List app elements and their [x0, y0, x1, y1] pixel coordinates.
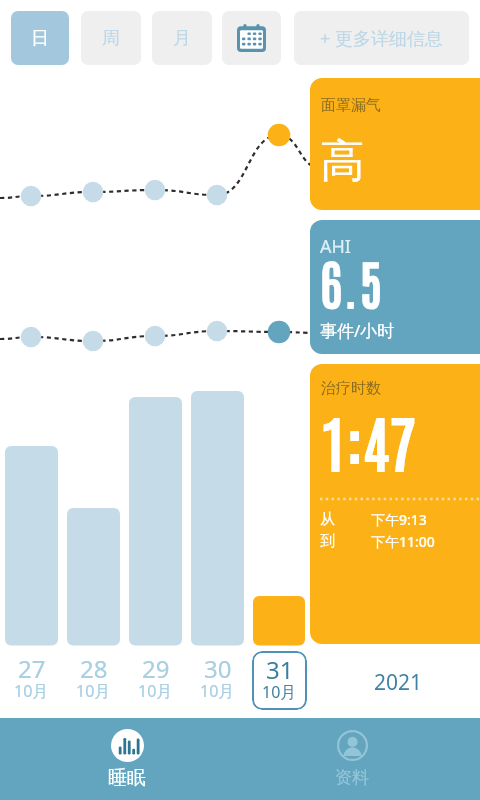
staticText: 10月: [14, 680, 49, 702]
staticText: 下午9:13: [371, 510, 427, 529]
staticText: 下午11:00: [371, 532, 435, 551]
staticText: 10月: [200, 680, 235, 702]
staticText: 28: [80, 652, 108, 685]
staticText: 月: [173, 27, 191, 50]
staticText: 日: [31, 27, 49, 50]
button[interactable]: 日: [11, 11, 69, 65]
staticText: 30: [204, 652, 232, 685]
staticText: 事件/小时: [320, 319, 395, 342]
staticText: 29: [142, 652, 170, 685]
staticText: 10月: [262, 681, 297, 703]
button[interactable]: 治疗时数: [310, 364, 480, 644]
staticText: 10月: [138, 680, 173, 702]
button[interactable]: 资料: [302, 718, 402, 788]
button[interactable]: 睡眠: [77, 718, 177, 790]
staticText: 资料: [335, 767, 369, 788]
button[interactable]: 31: [252, 651, 307, 710]
staticText: 1:47: [321, 402, 417, 480]
staticText: 31: [266, 653, 294, 686]
button[interactable]: AHI: [310, 220, 480, 354]
staticText: 到: [320, 532, 335, 551]
button[interactable]: + 更多详细信息: [294, 11, 469, 65]
button[interactable]: 月: [152, 11, 212, 65]
staticText: 周: [102, 27, 120, 50]
staticText: 27: [18, 652, 46, 685]
staticText: 高: [320, 133, 365, 190]
staticText: 面罩漏气: [321, 96, 381, 115]
staticText: 2021: [374, 668, 423, 697]
staticText: 睡眠: [108, 766, 146, 790]
staticText: 10月: [76, 680, 111, 702]
staticText: 6.5: [320, 247, 384, 316]
button[interactable]: Calendar: [222, 11, 281, 65]
staticText: 治疗时数: [321, 379, 381, 398]
staticText: + 更多详细信息: [320, 26, 443, 51]
button[interactable]: 周: [81, 11, 141, 65]
staticText: 从: [320, 510, 335, 529]
button[interactable]: 面罩漏气: [310, 78, 480, 210]
staticText: AHI: [320, 234, 351, 259]
